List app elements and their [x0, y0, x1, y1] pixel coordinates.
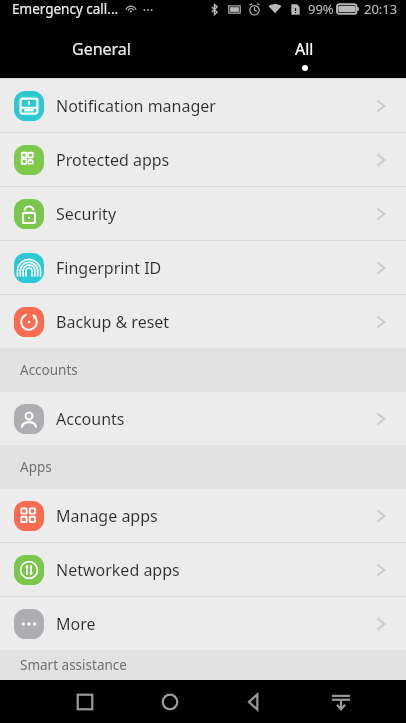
button[interactable]: Recent apps	[42, 680, 127, 723]
button[interactable]: Fingerprint ID	[0, 241, 406, 294]
staticText: Smart assistance	[20, 656, 127, 674]
staticText: Emergency call...	[12, 0, 119, 18]
button[interactable]: Networked apps	[0, 543, 406, 596]
button[interactable]: General	[0, 30, 203, 78]
button[interactable]: Backup & reset	[0, 295, 406, 348]
staticText: General	[72, 38, 131, 60]
staticText: 99%	[308, 0, 334, 18]
button[interactable]: Back	[212, 680, 298, 723]
button[interactable]: Protected apps	[0, 133, 406, 186]
button[interactable]: All	[203, 30, 406, 78]
button[interactable]: Security	[0, 187, 406, 240]
staticText: Accounts	[56, 408, 125, 430]
staticText: Apps	[20, 458, 52, 476]
staticText: Networked apps	[56, 559, 180, 581]
button[interactable]: Home	[127, 680, 212, 723]
staticText: 20:13	[364, 0, 398, 18]
staticText: All	[295, 38, 314, 60]
staticText: Security	[56, 203, 117, 225]
staticText: Backup & reset	[56, 311, 170, 333]
button[interactable]: Notification manager	[0, 79, 406, 132]
staticText: Protected apps	[56, 149, 170, 171]
staticText: Notification manager	[56, 95, 216, 117]
button[interactable]: Hide navigation bar	[298, 680, 384, 723]
button[interactable]: Accounts	[0, 392, 406, 445]
staticText: Manage apps	[56, 505, 158, 527]
button[interactable]: More	[0, 597, 406, 650]
staticText: Accounts	[20, 361, 78, 379]
staticText: More	[56, 613, 96, 635]
button[interactable]: Manage apps	[0, 489, 406, 542]
staticText: Fingerprint ID	[56, 257, 162, 279]
